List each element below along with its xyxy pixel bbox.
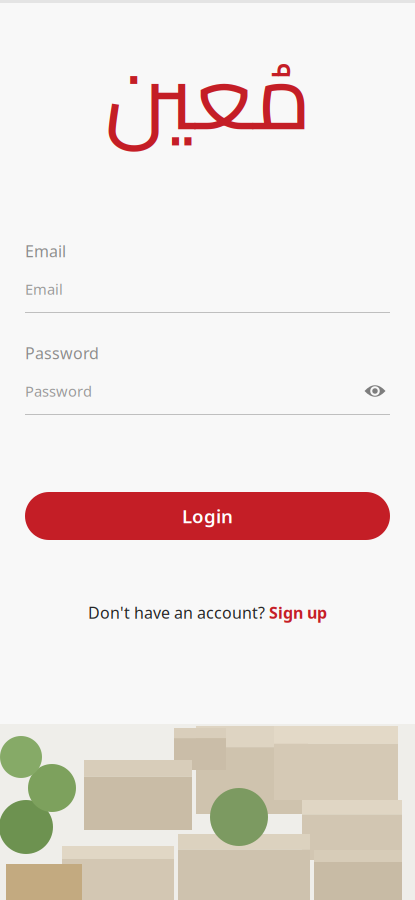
staticText: Email bbox=[25, 240, 66, 262]
button[interactable]: Don't have an account? bbox=[88, 602, 327, 623]
staticText: Sign up bbox=[269, 602, 327, 623]
staticText: Password bbox=[25, 381, 92, 401]
staticText: Email bbox=[25, 279, 63, 299]
button[interactable]: Login bbox=[25, 492, 390, 540]
staticText: مُعين bbox=[104, 11, 310, 181]
button[interactable]: Show password bbox=[360, 381, 390, 401]
staticText: Password bbox=[25, 342, 99, 364]
staticText: Login bbox=[182, 504, 233, 528]
staticText: Don't have an account? bbox=[88, 602, 269, 623]
